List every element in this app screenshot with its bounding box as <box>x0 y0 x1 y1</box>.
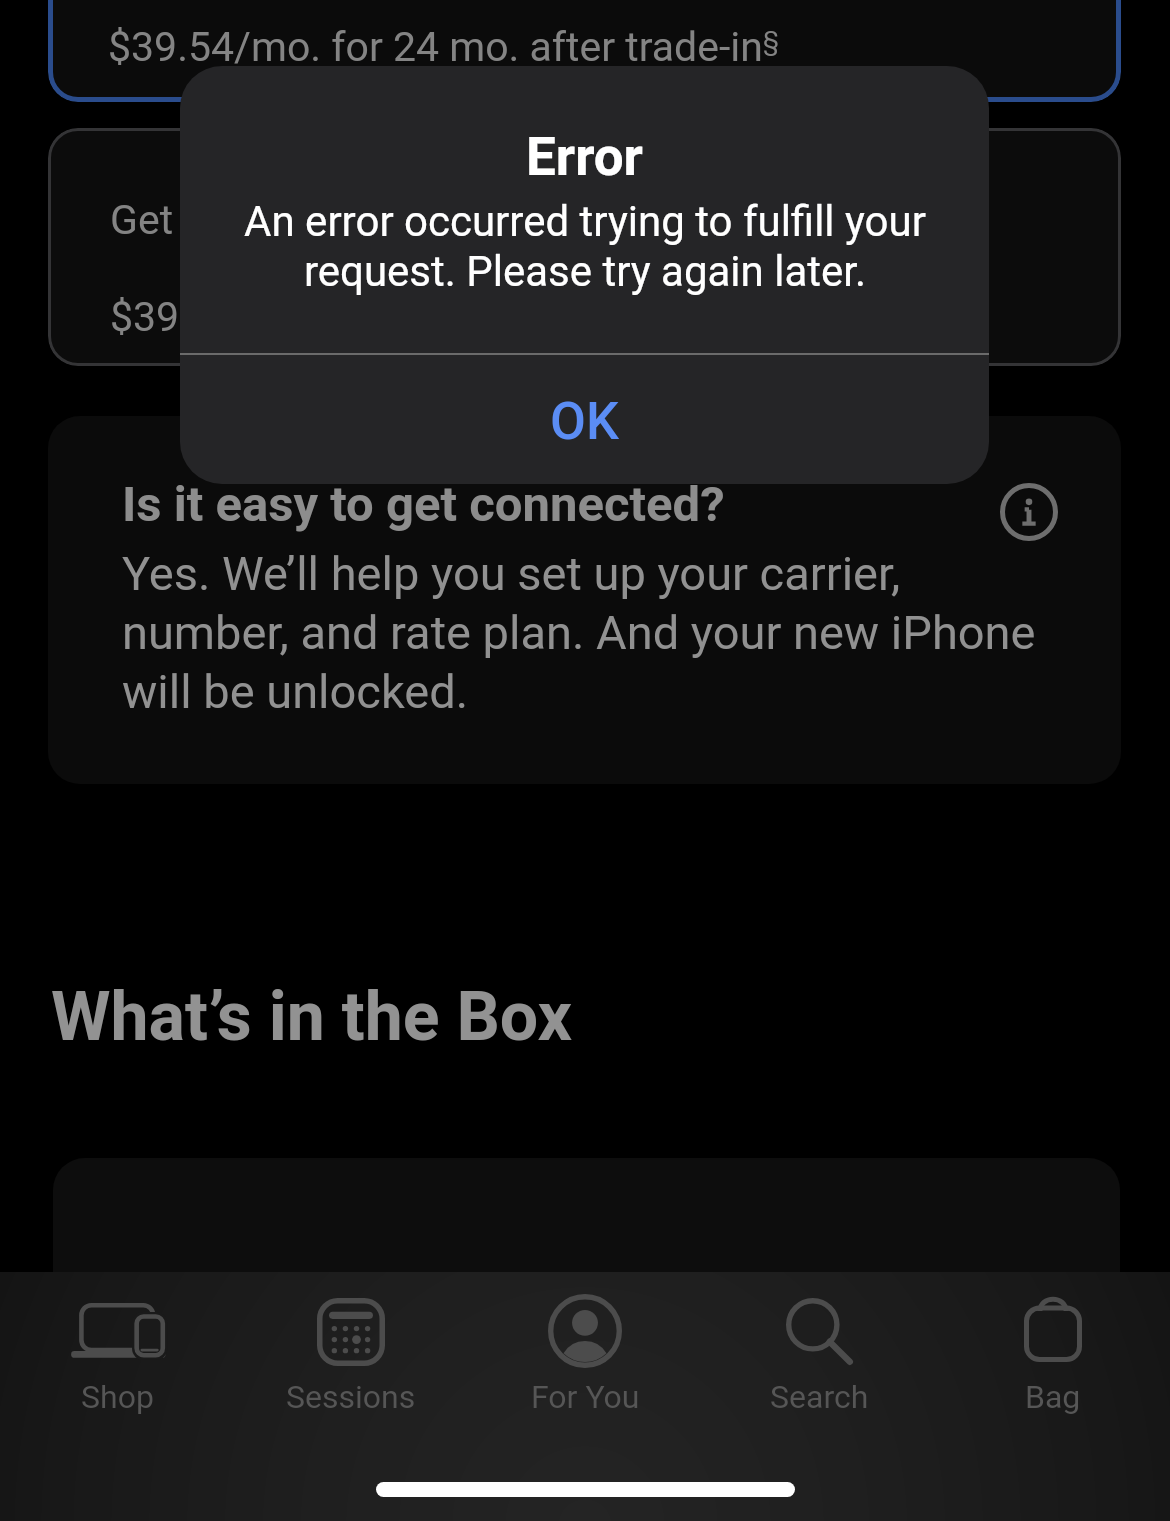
button[interactable]: Search <box>702 1294 936 1416</box>
staticText: An error occurred trying to fulfill your… <box>235 197 935 296</box>
button[interactable]: OK <box>180 358 989 484</box>
button[interactable]: Shop <box>0 1294 234 1416</box>
staticText: $39.54/mo. for 24 mo. <box>110 293 522 341</box>
staticText: For You <box>531 1378 640 1416</box>
staticText: Search <box>770 1378 869 1416</box>
button[interactable]: Bag <box>936 1294 1170 1416</box>
staticText: What’s in the Box <box>51 977 573 1057</box>
staticText: Is it easy to get connected? <box>122 476 725 533</box>
button[interactable] <box>53 1158 1120 1358</box>
staticText: Error <box>526 126 643 188</box>
staticText: Get a gift card up to $200 <box>110 196 572 244</box>
button[interactable]: Info <box>1000 483 1058 541</box>
button[interactable]: Sessions <box>234 1294 468 1416</box>
button[interactable]: Get a gift card up to $200 <box>48 128 1121 366</box>
button[interactable]: $39.54/mo. for 24 mo. after trade-in§ <box>48 0 1121 102</box>
button[interactable]: Is it easy to get connected? <box>48 416 1121 784</box>
staticText: Sessions <box>286 1378 416 1416</box>
staticText: Yes. We’ll help you set up your carrier,… <box>122 546 1052 719</box>
staticText: OK <box>550 391 619 452</box>
button[interactable]: For You <box>468 1294 702 1416</box>
staticText: $39.54/mo. for 24 mo. after trade-in§ <box>108 23 779 71</box>
staticText: Bag <box>1025 1378 1081 1416</box>
staticText: Shop <box>81 1378 154 1416</box>
